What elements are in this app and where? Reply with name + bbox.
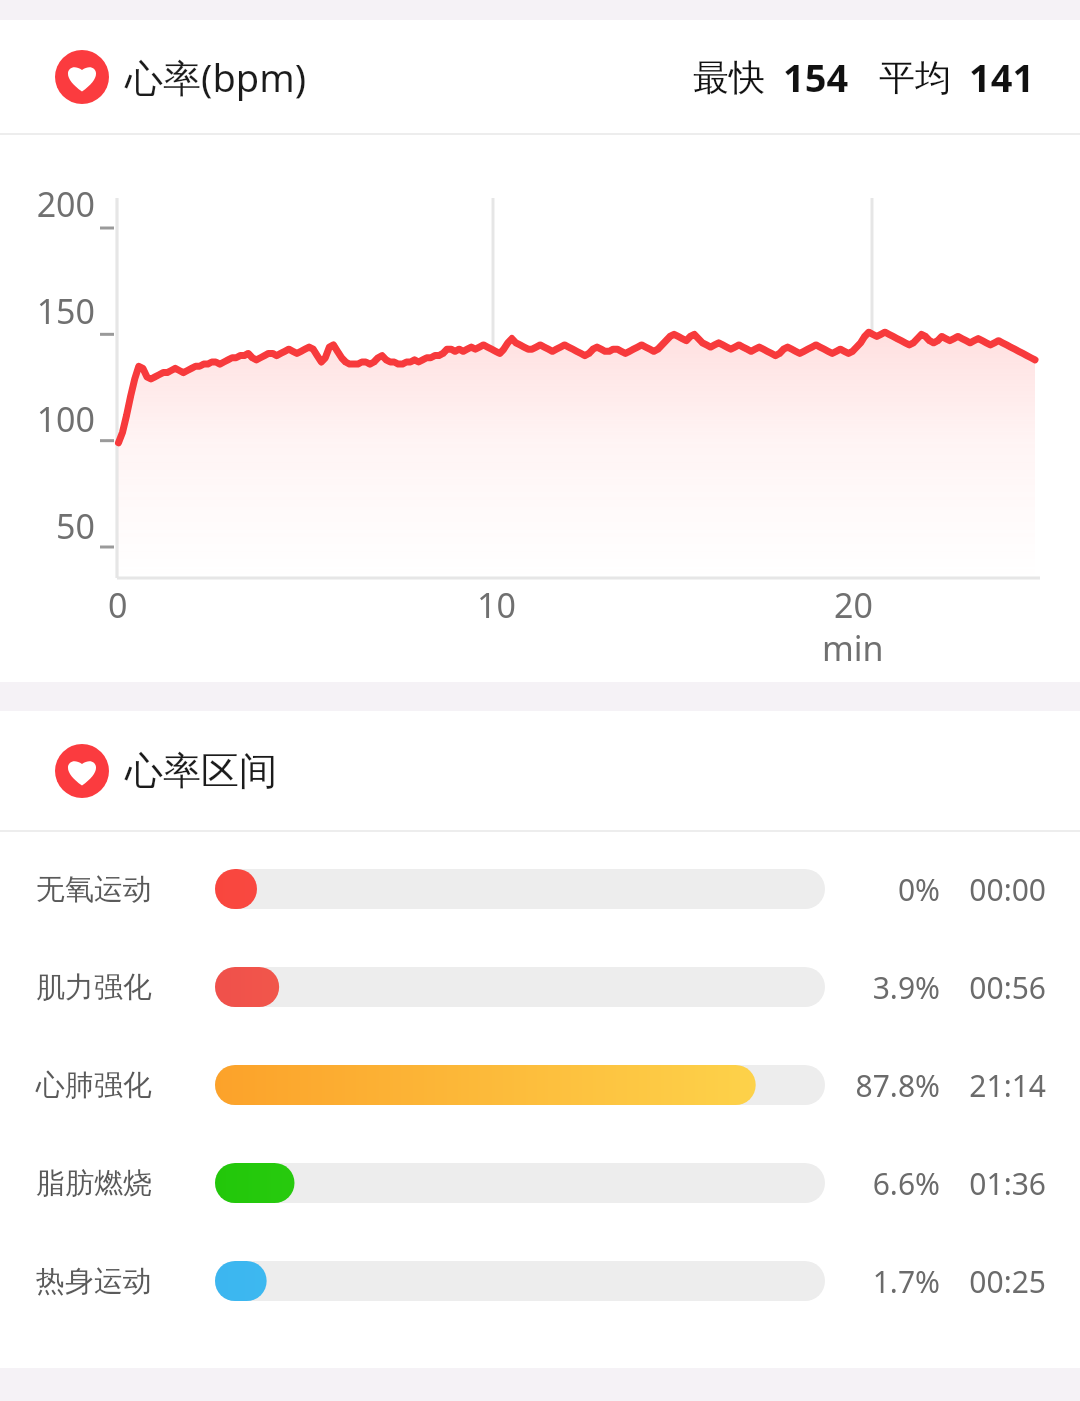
staticText: 心率区间 [125, 747, 277, 795]
staticText: 100 [36, 396, 95, 442]
button[interactable]: 心率区间 [0, 711, 1080, 830]
staticText: 热身运动 [36, 1263, 152, 1300]
staticText: 50 [56, 503, 95, 549]
staticText: 1.7% [872, 1261, 940, 1302]
staticText: 6.6% [872, 1163, 940, 1204]
button[interactable]: 热身运动 [0, 1232, 1080, 1330]
staticText: 0% [897, 869, 940, 910]
staticText: 154 [783, 51, 849, 103]
button[interactable]: 心率(bpm) [0, 20, 1080, 133]
button[interactable]: 脂肪燃烧 [0, 1134, 1080, 1232]
button[interactable]: 心肺强化 [0, 1036, 1080, 1134]
staticText: 21:14 [969, 1065, 1046, 1106]
staticText: 87.8% [855, 1065, 940, 1106]
staticText: 脂肪燃烧 [36, 1165, 152, 1202]
staticText: 0 [108, 582, 128, 628]
staticText: min [822, 625, 884, 671]
staticText: 3.9% [872, 967, 940, 1008]
button[interactable]: 肌力强化 [0, 938, 1080, 1036]
staticText: 141 [969, 51, 1035, 103]
staticText: 肌力强化 [36, 969, 152, 1006]
staticText: 10 [477, 582, 516, 628]
staticText: 150 [36, 288, 95, 334]
staticText: 01:36 [969, 1163, 1046, 1204]
staticText: 00:00 [969, 869, 1046, 910]
button[interactable]: 无氧运动 [0, 840, 1080, 938]
staticText: 无氧运动 [36, 871, 152, 908]
staticText: 平均 [879, 55, 951, 100]
staticText: 心率(bpm) [125, 51, 307, 103]
staticText: 200 [36, 181, 95, 227]
staticText: 最快 [693, 55, 765, 100]
staticText: 00:25 [969, 1261, 1046, 1302]
staticText: 20 [834, 582, 873, 628]
staticText: 心肺强化 [36, 1067, 152, 1104]
staticText: 00:56 [969, 967, 1046, 1008]
